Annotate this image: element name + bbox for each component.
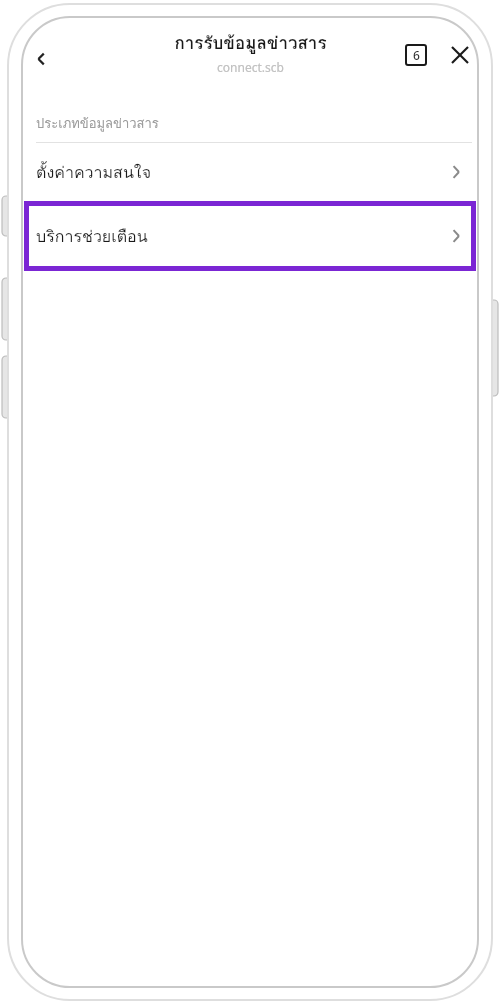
staticText: connect.scb (217, 59, 284, 75)
staticText: ประเภทข้อมูลข่าวสาร (36, 113, 159, 134)
button[interactable]: ตั้งค่าความสนใจ (24, 143, 476, 201)
button[interactable]: บริการช่วยเตือน (24, 201, 476, 271)
staticText: 6 (413, 47, 420, 63)
button[interactable]: Back (24, 41, 60, 77)
button[interactable]: Close (444, 39, 476, 71)
staticText: การรับข้อมูลข่าวสาร (174, 29, 327, 56)
staticText: บริการช่วยเตือน (36, 224, 446, 249)
button[interactable]: Tabs, 6 open (400, 39, 432, 71)
staticText: ตั้งค่าความสนใจ (36, 160, 446, 185)
